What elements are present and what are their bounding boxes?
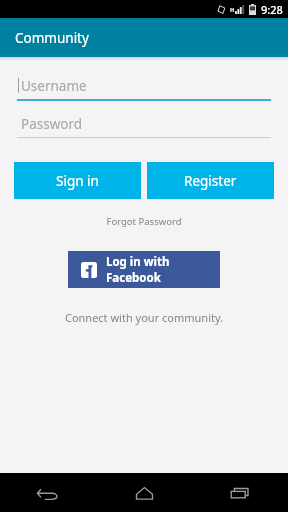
staticText: 9:28 xyxy=(261,2,283,17)
staticText: Password xyxy=(21,115,83,133)
button[interactable]: Register xyxy=(147,162,274,199)
button[interactable]: Username xyxy=(17,75,271,101)
button[interactable]: Password xyxy=(17,113,271,138)
staticText: Sign in xyxy=(56,172,99,190)
staticText: Username xyxy=(21,77,87,95)
button[interactable]: Recent apps xyxy=(192,473,288,512)
button[interactable]: Home xyxy=(96,473,192,512)
staticText: Community xyxy=(15,29,89,47)
staticText: Register xyxy=(184,172,237,190)
staticText: Log in with Facebook xyxy=(106,254,220,286)
button[interactable]: Log in with Facebook xyxy=(68,251,220,288)
staticText: H xyxy=(230,6,235,13)
button[interactable]: Sign in xyxy=(14,162,141,199)
button[interactable]: Back xyxy=(0,473,96,512)
staticText: Connect with your community. xyxy=(0,310,288,325)
staticText: Forgot Password xyxy=(0,215,288,228)
